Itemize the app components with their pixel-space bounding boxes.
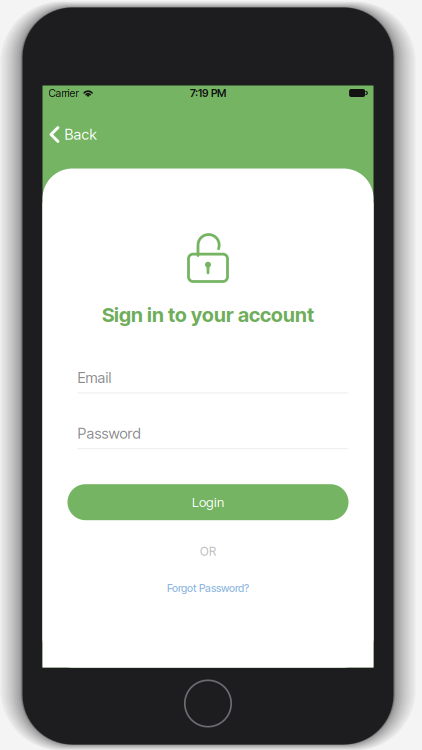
staticText: Sign in to your account: [102, 302, 314, 327]
staticText: 7:19 PM: [190, 86, 226, 99]
button[interactable]: Password: [77, 424, 348, 449]
staticText: OR: [200, 544, 216, 559]
button[interactable]: Login: [67, 484, 348, 520]
staticText: Forgot Password?: [167, 582, 249, 595]
button[interactable]: Back: [42, 100, 103, 150]
staticText: Login: [192, 494, 224, 510]
button[interactable]: Home: [184, 679, 232, 727]
staticText: Password: [77, 424, 140, 442]
button[interactable]: Email: [77, 369, 348, 393]
staticText: Back: [64, 126, 96, 143]
staticText: Email: [77, 369, 111, 386]
staticText: Carrier: [48, 86, 78, 99]
button[interactable]: Forgot Password?: [67, 582, 348, 595]
